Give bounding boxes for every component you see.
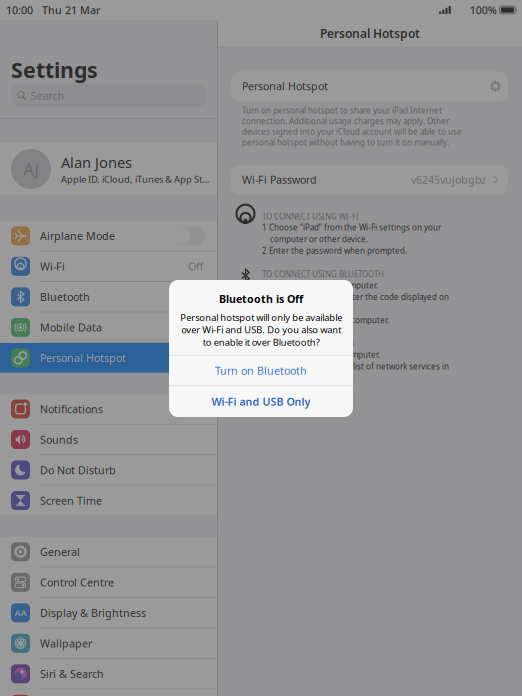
staticText: 2 Enter the password when prompted. [262, 245, 407, 256]
staticText: Personal Hotspot [320, 25, 420, 41]
staticText: your settings. [262, 373, 322, 383]
staticText: 3 Connect to iPad from computer. [262, 315, 389, 325]
staticText: Personal Hotspot [242, 79, 328, 93]
staticText: Thu 21 Mar [42, 3, 101, 17]
staticText: Do Not Disturb [40, 463, 116, 477]
staticText: Sounds [40, 432, 78, 447]
staticText: TO CONNECT USING WI-FI [262, 211, 359, 222]
staticText: Alan Jones [61, 153, 132, 172]
staticText: Personal hotspot will only be available … [180, 311, 342, 348]
staticText: Apple ID, iCloud, iTunes & App St… [61, 173, 209, 185]
staticText: v6245vujobgbz [411, 173, 486, 187]
staticText: 1 Plug iPad into your computer. [262, 349, 380, 360]
staticText: Display & Brightness [40, 606, 146, 620]
button[interactable]: AA [0, 598, 217, 628]
staticText: Notifications [40, 402, 103, 416]
staticText: Mobile Data [40, 320, 102, 334]
staticText: 2 On iPad, tap Pair or enter the code di… [262, 292, 449, 302]
button[interactable]: Personal Hotspot [0, 343, 217, 373]
staticText: Bluetooth is Off [219, 292, 303, 306]
staticText: 2 Choose iPad from the list of network s… [262, 361, 449, 372]
staticText: AA [14, 607, 26, 619]
button[interactable]: Wallpaper [0, 628, 217, 658]
staticText: Turn on personal hotspot to share your i… [242, 105, 462, 148]
staticText: Airplane Mode [40, 229, 115, 243]
button[interactable]: General [0, 537, 217, 567]
button[interactable]: Do Not Disturb [0, 455, 217, 485]
staticText: Wi-Fi [40, 259, 65, 273]
button[interactable]: Touch ID & Passcode [0, 689, 217, 696]
button[interactable]: Screen Time [0, 486, 217, 515]
staticText: Screen Time [40, 493, 102, 508]
button[interactable]: Siri & Search [0, 659, 217, 689]
staticText: 100% [470, 3, 497, 17]
staticText: Wi-Fi Password [242, 173, 317, 187]
staticText: TO CONNECT USING BLUETOOTH [262, 269, 384, 279]
button[interactable]: Search [11, 84, 206, 107]
button[interactable]: Notifications [0, 394, 217, 424]
button[interactable]: Wi-Fi Password [218, 165, 522, 195]
button[interactable]: Wi-Fi [0, 251, 217, 281]
button[interactable]: Wi-Fi and USB Only [169, 386, 353, 417]
button[interactable]: Control Centre [0, 567, 217, 597]
button[interactable]: AJ [0, 143, 217, 195]
staticText: Control Centre [40, 575, 114, 589]
staticText: Search [31, 88, 65, 103]
button[interactable]: Turn on Bluetooth [169, 355, 353, 385]
staticText: Wallpaper [40, 636, 92, 650]
staticText: computer or other device. [262, 234, 368, 244]
staticText: AJ [23, 158, 38, 180]
button[interactable]: Airplane Mode [0, 221, 217, 251]
staticText: Turn on Bluetooth [215, 363, 307, 378]
staticText: 1 Pair iPad with your computer. [262, 280, 378, 291]
staticText: Siri & Search [40, 667, 104, 681]
button[interactable]: Sounds [0, 425, 217, 454]
staticText: 10:00 [6, 3, 33, 17]
staticText: General [40, 545, 80, 559]
button[interactable]: Bluetooth [0, 282, 217, 312]
staticText: Bluetooth [40, 290, 90, 304]
staticText: Personal Hotspot [40, 351, 126, 365]
staticText: Wi-Fi and USB Only [211, 394, 310, 409]
button[interactable]: Mobile Data [0, 312, 217, 342]
staticText: TO CONNECT USING USB [262, 338, 354, 349]
staticText: 1 Choose “iPad” from the Wi-Fi settings … [262, 222, 441, 233]
staticText: Settings [11, 56, 98, 84]
staticText: Off [188, 259, 203, 273]
